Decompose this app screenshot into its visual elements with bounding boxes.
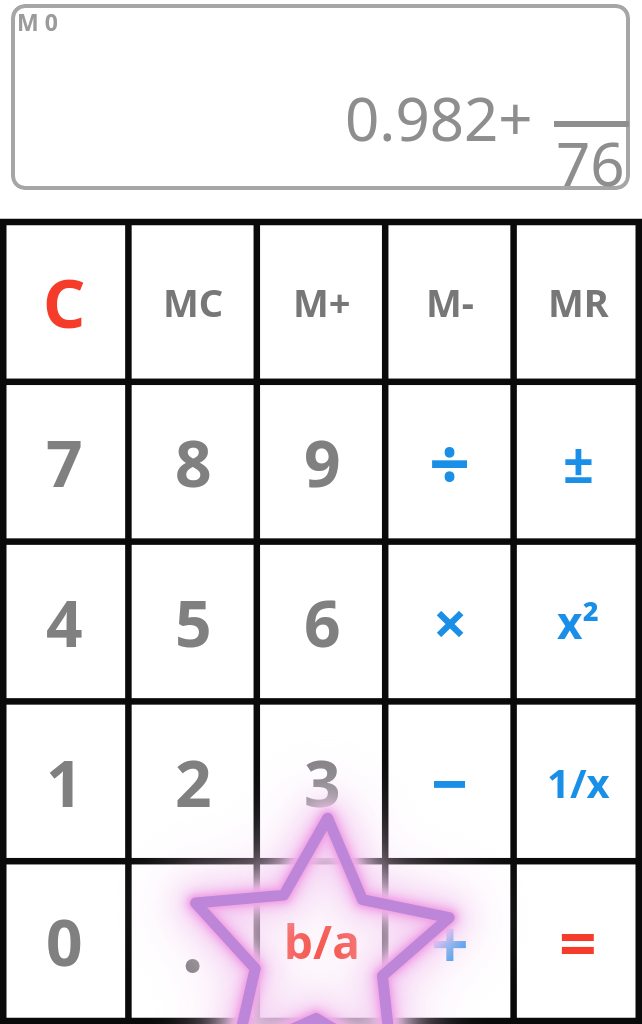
staticText: 7 — [46, 419, 83, 506]
staticText: − — [431, 739, 469, 826]
staticText: 0 — [46, 898, 83, 985]
staticText: x² — [557, 592, 600, 652]
staticText: b/a — [284, 910, 360, 973]
button[interactable]: 6 — [258, 542, 386, 702]
staticText: 76 — [556, 122, 625, 204]
button[interactable]: ± — [514, 382, 642, 542]
staticText: M- — [426, 276, 474, 328]
staticText: M+ — [293, 276, 351, 328]
staticText: 3 — [304, 739, 341, 826]
button[interactable]: 2 — [129, 702, 258, 862]
staticText: 5 — [175, 579, 212, 666]
button[interactable]: b/a — [258, 862, 386, 1021]
button[interactable]: − — [386, 702, 514, 862]
staticText: 9 — [304, 419, 341, 506]
staticText: 1 — [46, 739, 83, 826]
button[interactable]: + — [386, 862, 514, 1021]
button[interactable] — [129, 862, 258, 1021]
staticText: M 0 — [17, 6, 58, 37]
staticText: 2 — [175, 739, 212, 826]
button[interactable]: 4 — [0, 542, 129, 702]
button[interactable]: 1/x — [514, 702, 642, 862]
staticText: 0.982+ — [345, 77, 533, 159]
button[interactable]: 5 — [129, 542, 258, 702]
staticText: MC — [163, 276, 224, 328]
button[interactable]: 9 — [258, 382, 386, 542]
staticText: × — [433, 581, 468, 663]
button[interactable]: ÷ — [386, 382, 514, 542]
button[interactable]: = — [514, 862, 642, 1021]
button[interactable]: × — [386, 542, 514, 702]
button[interactable]: M- — [386, 222, 514, 382]
button[interactable]: 8 — [129, 382, 258, 542]
staticText: 6 — [304, 579, 341, 666]
staticText: MR — [548, 276, 609, 328]
staticText: ± — [563, 425, 594, 499]
button[interactable]: 1 — [0, 702, 129, 862]
button[interactable]: M+ — [258, 222, 386, 382]
button[interactable]: MC — [129, 222, 258, 382]
button[interactable]: 7 — [0, 382, 129, 542]
staticText: = — [559, 897, 597, 987]
staticText: 8 — [175, 419, 212, 506]
staticText: 1/x — [547, 755, 610, 809]
button[interactable]: MR — [514, 222, 642, 382]
staticText: ÷ — [429, 413, 471, 511]
staticText: + — [431, 897, 469, 987]
staticText: C — [43, 257, 86, 347]
button[interactable]: C — [0, 222, 129, 382]
button[interactable]: 3 — [258, 702, 386, 862]
staticText: 4 — [46, 579, 83, 666]
button[interactable]: 0 — [0, 862, 129, 1021]
button[interactable]: x² — [514, 542, 642, 702]
